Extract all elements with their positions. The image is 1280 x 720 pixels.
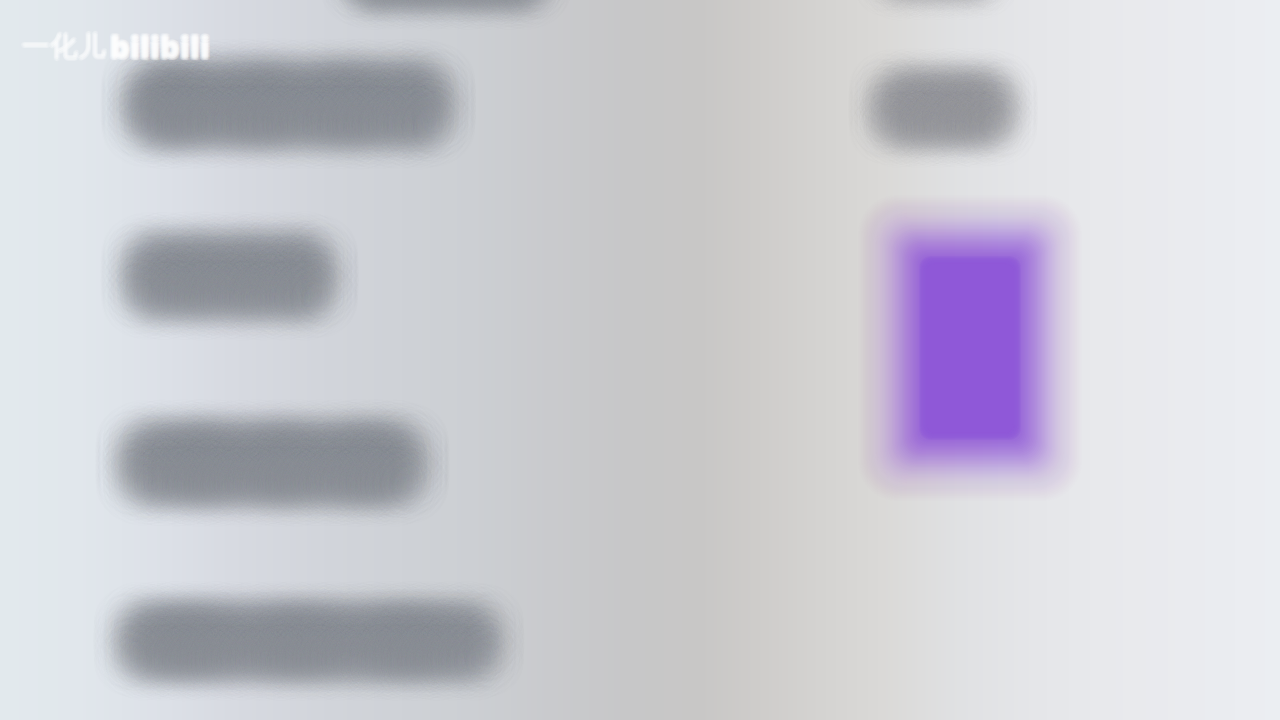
staticText: 一化儿 — [20, 28, 104, 63]
staticText — [107, 34, 111, 56]
staticText: bilibili — [111, 25, 211, 65]
staticText — [105, 34, 109, 55]
staticText — [105, 37, 109, 59]
staticText: bilibili — [110, 26, 210, 67]
staticText: bilibili — [110, 24, 210, 65]
staticText: 一化儿 — [23, 28, 107, 62]
staticText: bilibili — [110, 28, 210, 69]
staticText — [104, 36, 108, 58]
staticText — [107, 37, 111, 58]
staticText: 一化儿 — [21, 27, 105, 62]
staticText: 一化儿 — [22, 27, 106, 62]
staticText: 一化儿 — [22, 31, 106, 65]
staticText: bilibili — [111, 27, 211, 68]
staticText: 一化儿 — [21, 31, 105, 65]
staticText: 一化儿 — [23, 30, 107, 65]
staticText: 一化儿 — [20, 30, 104, 64]
staticText — [104, 35, 108, 56]
staticText: 一化儿 — [22, 29, 106, 64]
staticText: bilibili — [108, 27, 208, 67]
staticText: bilibili — [108, 25, 208, 66]
staticText: bilibili — [109, 28, 209, 68]
staticText: bilibili — [109, 24, 209, 65]
